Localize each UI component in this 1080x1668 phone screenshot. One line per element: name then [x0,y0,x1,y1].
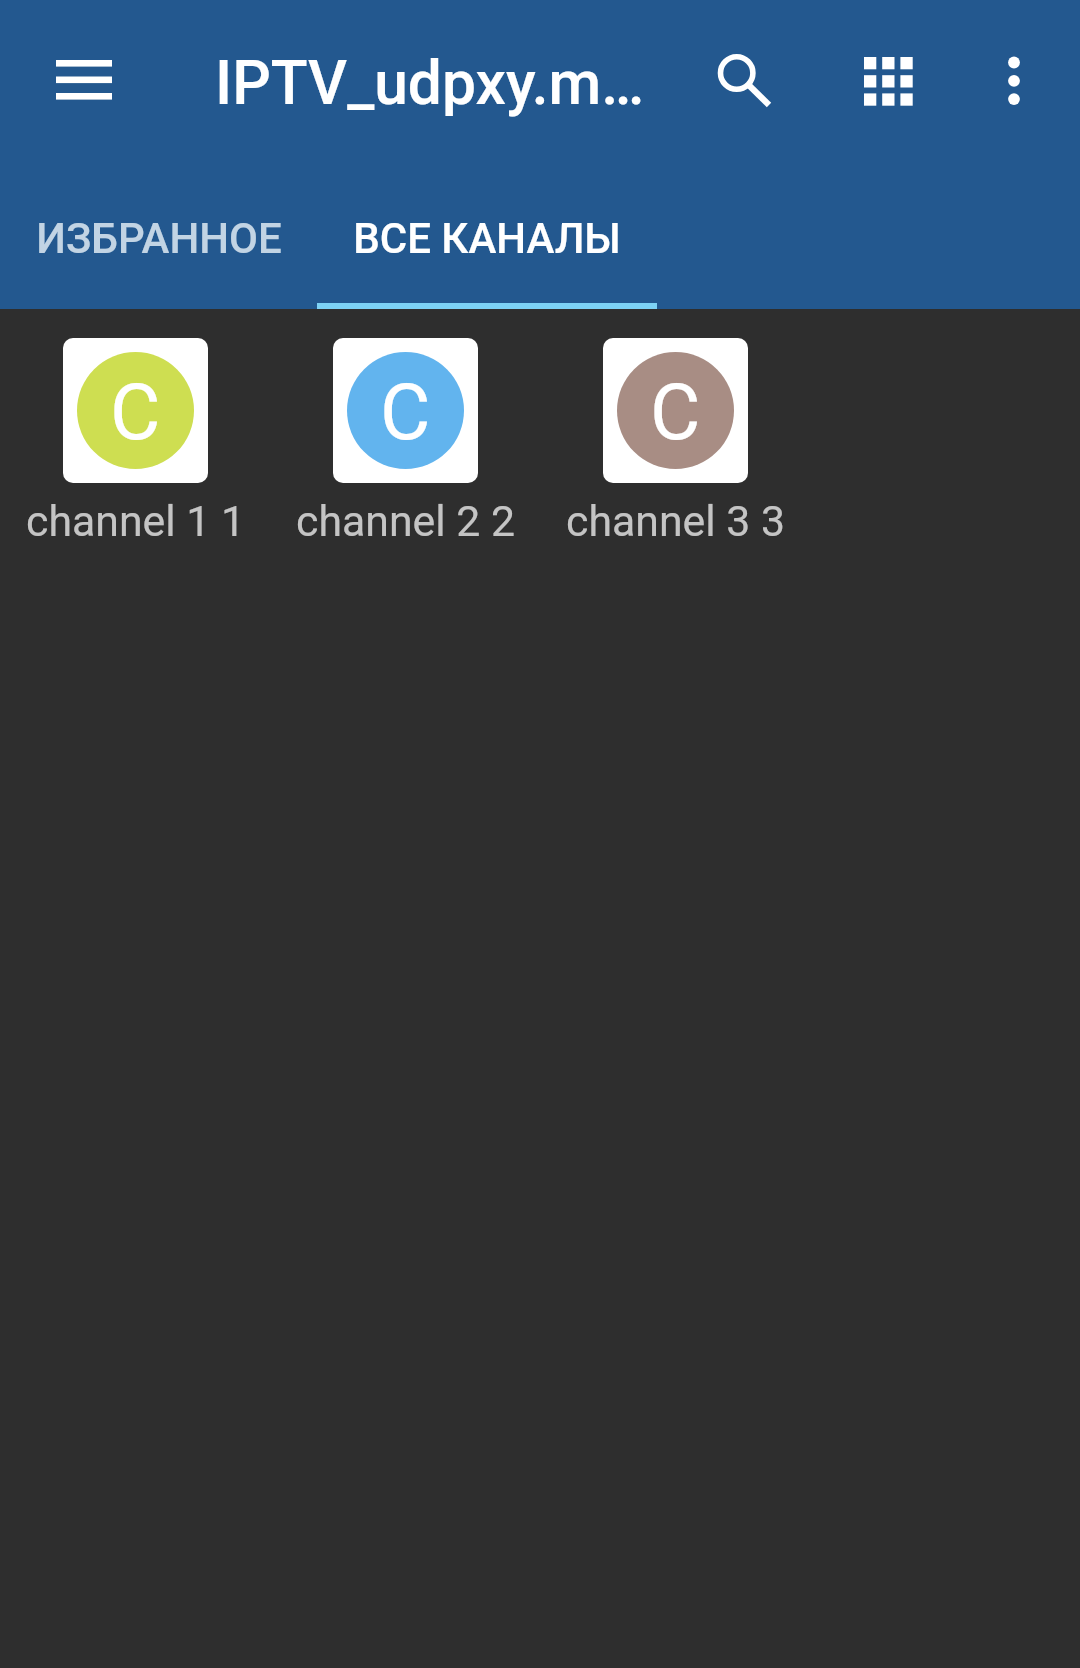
staticText: IPTV_udpxy.m… [215,48,645,119]
button[interactable]: Grid view [836,29,940,133]
staticText: C [110,367,161,458]
button[interactable]: ИЗБРАННОЕ [0,161,317,309]
button[interactable]: More options [962,29,1066,133]
staticText: channel 1 1 [26,496,245,546]
button[interactable]: C [270,338,540,546]
staticText: ВСЕ КАНАЛЫ [353,214,621,263]
button[interactable]: C [0,338,270,546]
staticText: C [380,367,431,458]
button[interactable]: ВСЕ КАНАЛЫ [317,161,657,309]
button[interactable]: C [540,338,810,546]
staticText: C [650,367,701,458]
staticText: channel 2 2 [296,496,515,546]
button[interactable]: Open navigation drawer [32,28,136,132]
staticText: channel 3 3 [566,496,785,546]
staticText: ИЗБРАННОЕ [36,214,282,263]
button[interactable]: Search [685,21,789,125]
